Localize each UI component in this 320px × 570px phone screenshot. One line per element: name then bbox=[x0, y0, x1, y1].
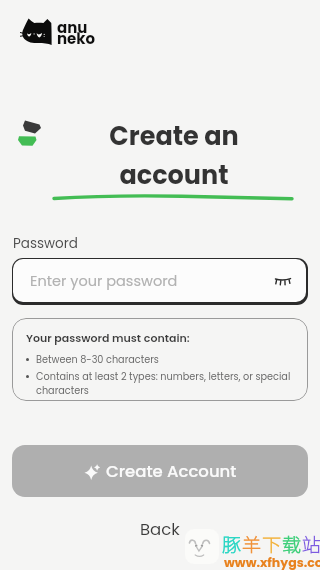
staticText: Create an account bbox=[44, 118, 304, 193]
staticText: Create Account bbox=[106, 460, 237, 483]
staticText: 站 bbox=[302, 530, 320, 558]
button[interactable]: Back bbox=[122, 513, 198, 546]
staticText: 载 bbox=[282, 530, 302, 558]
staticText: anu neko bbox=[57, 17, 96, 50]
button[interactable]: anu neko bbox=[16, 12, 100, 48]
button[interactable]: Enter your password bbox=[12, 258, 308, 305]
button[interactable]: Create Account bbox=[12, 445, 308, 497]
staticText: 豚 bbox=[222, 530, 242, 558]
staticText: Back bbox=[140, 518, 180, 541]
button[interactable]: Show password bbox=[270, 268, 296, 294]
staticText: 下 bbox=[262, 530, 282, 558]
staticText: Between 8-30 characters bbox=[36, 353, 159, 367]
staticText: Enter your password bbox=[30, 271, 178, 291]
staticText: Contains at least 2 types: numbers, lett… bbox=[36, 370, 300, 397]
staticText: 羊 bbox=[242, 530, 262, 558]
staticText: Your password must contain: bbox=[26, 330, 190, 345]
staticText: Password bbox=[13, 234, 78, 253]
staticText: www.xfhygs.com bbox=[224, 554, 320, 570]
